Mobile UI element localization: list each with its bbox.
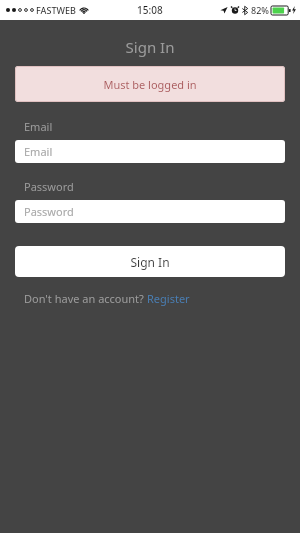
staticText: Don't have an account? (24, 291, 147, 306)
staticText: Password (24, 179, 74, 194)
button[interactable]: Sign In (15, 246, 285, 277)
staticText: Email (24, 119, 53, 134)
staticText: 15:08 (137, 3, 163, 17)
staticText: Sign In (130, 254, 170, 270)
button[interactable]: Must be logged in (15, 66, 285, 102)
staticText: Password (24, 204, 74, 219)
staticText: FASTWEB (36, 4, 76, 16)
staticText: Must be logged in (103, 77, 197, 92)
staticText: Register (147, 291, 190, 306)
staticText: Sign In (0, 37, 300, 57)
button[interactable]: Email (15, 140, 285, 163)
button[interactable]: Password (15, 200, 285, 223)
staticText: Email (24, 144, 53, 159)
staticText: 82% (251, 4, 269, 16)
button[interactable]: Register (147, 291, 190, 306)
